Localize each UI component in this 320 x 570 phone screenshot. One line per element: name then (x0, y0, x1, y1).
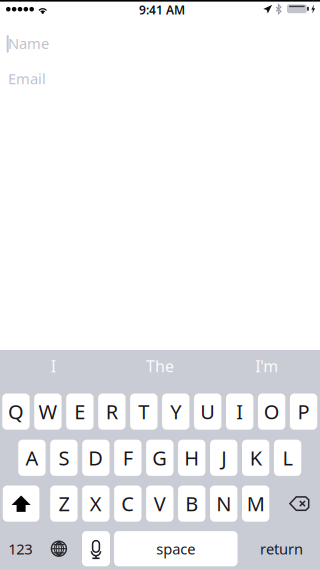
staticText: R (106, 398, 118, 425)
button[interactable]: J (210, 440, 237, 476)
staticText: A (25, 444, 38, 471)
button[interactable]: space (114, 531, 238, 566)
staticText: I (236, 398, 243, 425)
staticText: K (250, 444, 262, 471)
button[interactable]: A (18, 440, 46, 476)
staticText: W (38, 398, 57, 425)
button[interactable]: D (82, 440, 109, 476)
staticText: U (200, 398, 215, 425)
button[interactable]: U (194, 393, 221, 430)
button[interactable]: Next keyboard (41, 531, 77, 567)
staticText: F (123, 444, 133, 471)
button[interactable]: S (50, 440, 77, 476)
staticText: O (264, 398, 280, 425)
staticText: Q (8, 398, 24, 425)
button[interactable]: T (130, 393, 157, 430)
staticText: 9:41 AM (139, 2, 185, 18)
staticText: S (58, 444, 69, 471)
staticText: Y (170, 398, 181, 425)
staticText: Email (8, 69, 46, 88)
button[interactable]: Q (2, 393, 30, 430)
button[interactable]: Shift (3, 485, 39, 522)
button[interactable]: The (107, 345, 213, 387)
staticText: L (283, 444, 293, 471)
staticText: Name (8, 33, 49, 53)
staticText: I'm (255, 355, 278, 377)
staticText: X (90, 490, 102, 517)
button[interactable]: E (66, 393, 93, 430)
button[interactable]: Z (50, 485, 77, 522)
staticText: D (88, 444, 103, 471)
staticText: G (152, 444, 167, 471)
button[interactable]: O (258, 393, 285, 430)
staticText: E (74, 398, 85, 425)
button[interactable]: W (34, 393, 62, 430)
staticText: The (146, 355, 174, 377)
button[interactable]: I'm (214, 345, 320, 387)
staticText: return (260, 539, 303, 558)
button[interactable]: X (82, 485, 109, 522)
button[interactable]: H (178, 440, 205, 476)
staticText: J (221, 444, 226, 471)
button[interactable]: K (242, 440, 269, 476)
button[interactable]: M (242, 485, 269, 522)
staticText: I (51, 355, 56, 377)
staticText: B (185, 490, 198, 517)
staticText: space (156, 539, 195, 558)
staticText: P (298, 398, 310, 425)
button[interactable]: B (178, 485, 205, 522)
button[interactable]: G (146, 440, 173, 476)
staticText: V (154, 490, 166, 517)
button[interactable]: I (226, 393, 253, 430)
staticText: Z (58, 490, 69, 517)
button[interactable]: Dictation (82, 531, 110, 566)
button[interactable]: R (98, 393, 125, 430)
button[interactable]: return (243, 531, 319, 567)
button[interactable]: Y (162, 393, 189, 430)
button[interactable]: 123 (0, 531, 40, 567)
staticText: M (247, 490, 265, 517)
staticText: H (184, 444, 199, 471)
button[interactable]: P (290, 393, 317, 430)
button[interactable]: C (114, 485, 141, 522)
button[interactable]: N (210, 485, 237, 522)
button[interactable]: I (0, 345, 106, 387)
staticText: T (138, 398, 149, 425)
staticText: 123 (8, 539, 32, 558)
button[interactable]: Delete (281, 485, 318, 522)
staticText: N (216, 490, 231, 517)
staticText: C (121, 490, 134, 517)
button[interactable]: V (146, 485, 173, 522)
button[interactable]: F (114, 440, 141, 476)
button[interactable]: L (274, 440, 301, 476)
